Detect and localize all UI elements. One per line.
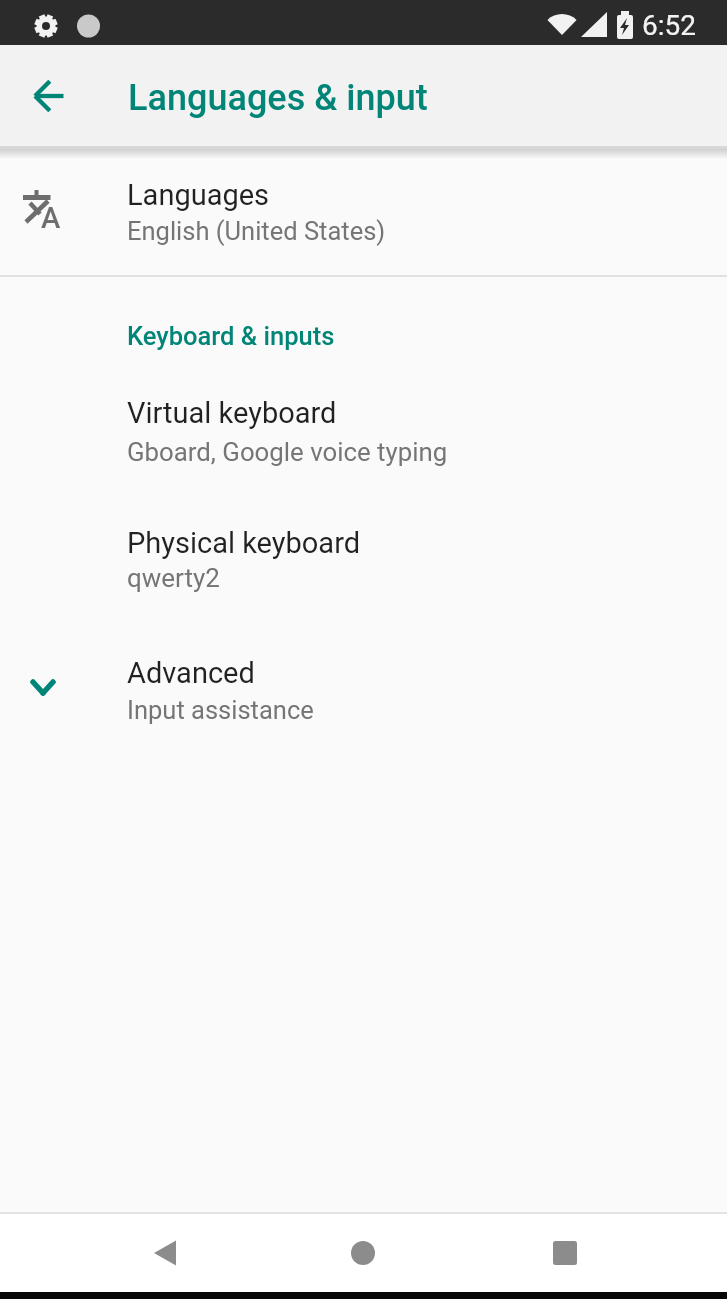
staticText: Keyboard & inputs	[127, 321, 335, 351]
staticText: Languages	[127, 178, 270, 212]
button[interactable]	[141, 1229, 189, 1277]
button[interactable]: Virtual keyboard	[0, 378, 727, 485]
staticText: Virtual keyboard	[127, 396, 337, 430]
staticText: Advanced	[127, 656, 255, 690]
staticText: Languages & input	[128, 77, 428, 119]
button[interactable]	[541, 1229, 589, 1277]
staticText: Gboard, Google voice typing	[127, 437, 448, 467]
button[interactable]	[339, 1229, 387, 1277]
button[interactable]	[26, 72, 74, 120]
staticText: Input assistance	[127, 695, 314, 725]
staticText: English (United States)	[127, 216, 386, 246]
button[interactable]: Advanced	[0, 637, 727, 744]
staticText: Physical keyboard	[127, 526, 361, 560]
button[interactable]: Physical keyboard	[0, 507, 727, 614]
staticText: qwerty2	[127, 563, 220, 593]
button[interactable]: A	[0, 149, 727, 275]
staticText: A	[41, 201, 61, 235]
staticText: 6:52	[642, 9, 696, 42]
